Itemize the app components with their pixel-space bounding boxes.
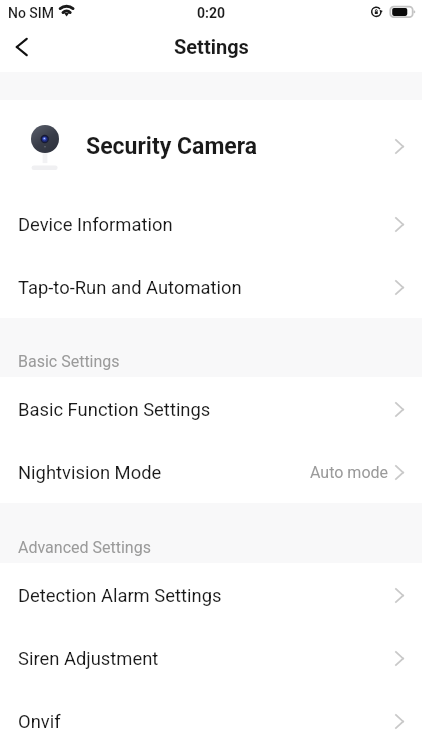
staticText: Tap-to-Run and Automation bbox=[18, 277, 242, 299]
button[interactable]: Back bbox=[0, 26, 42, 68]
staticText: Settings bbox=[174, 35, 249, 58]
button[interactable]: Security Camera bbox=[0, 100, 422, 192]
button[interactable]: Siren Adjustment bbox=[0, 626, 422, 689]
staticText: Onvif bbox=[18, 711, 61, 733]
staticText: Detection Alarm Settings bbox=[18, 585, 222, 607]
staticText: Nightvision Mode bbox=[18, 462, 162, 484]
button[interactable]: Onvif bbox=[0, 689, 422, 750]
button[interactable]: Nightvision Mode bbox=[0, 440, 422, 503]
staticText: Security Camera bbox=[86, 133, 258, 160]
staticText: Device Information bbox=[18, 214, 173, 236]
button[interactable]: Basic Function Settings bbox=[0, 377, 422, 440]
staticText: Advanced Settings bbox=[18, 538, 151, 557]
staticText: Basic Function Settings bbox=[18, 399, 211, 421]
staticText: 0:20 bbox=[197, 5, 226, 21]
staticText: Auto mode bbox=[310, 463, 389, 482]
button[interactable]: Detection Alarm Settings bbox=[0, 563, 422, 626]
button[interactable]: Device Information bbox=[0, 192, 422, 255]
staticText: Siren Adjustment bbox=[18, 648, 159, 670]
staticText: No SIM bbox=[8, 5, 55, 21]
staticText: Basic Settings bbox=[18, 352, 120, 371]
button[interactable]: Tap-to-Run and Automation bbox=[0, 255, 422, 318]
